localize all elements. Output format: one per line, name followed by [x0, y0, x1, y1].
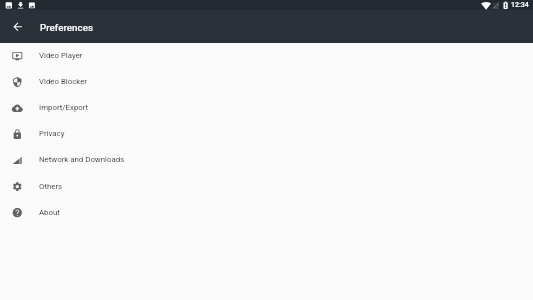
staticText: Privacy — [39, 129, 65, 138]
button[interactable]: About — [0, 200, 533, 226]
button[interactable]: Network and Downloads — [0, 147, 533, 173]
staticText: Preferences — [40, 22, 93, 33]
staticText: 12:34 — [511, 1, 529, 9]
staticText: Import/Export — [39, 103, 89, 112]
button[interactable]: Import/Export — [0, 95, 533, 121]
button[interactable]: Privacy — [0, 121, 533, 147]
button[interactable]: Others — [0, 174, 533, 200]
staticText: About — [39, 208, 60, 217]
staticText: Video Blocker — [39, 77, 87, 86]
staticText: Video Player — [39, 51, 83, 60]
button[interactable]: Video Blocker — [0, 69, 533, 95]
button[interactable]: Video Player — [0, 43, 533, 69]
button[interactable]: Navigate up — [0, 10, 35, 43]
staticText: Others — [39, 182, 63, 191]
staticText: Network and Downloads — [39, 155, 125, 164]
